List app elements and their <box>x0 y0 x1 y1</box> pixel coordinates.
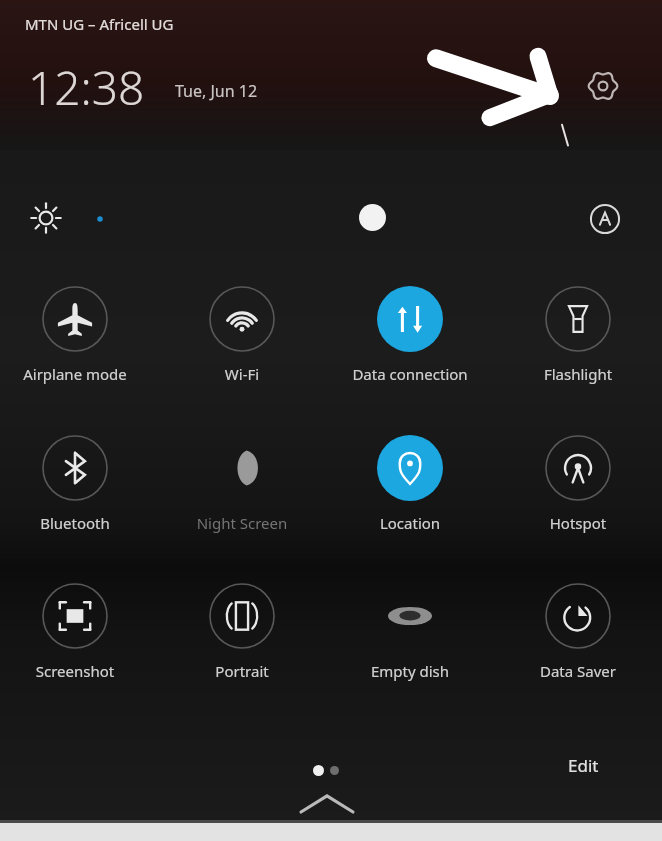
button[interactable]: Data Saver <box>512 583 644 693</box>
button[interactable]: Edit <box>568 754 599 777</box>
staticText: MTN UG – Africell UG <box>25 14 174 34</box>
staticText: Empty dish <box>344 661 476 681</box>
button[interactable] <box>359 204 386 231</box>
button[interactable]: Wi-Fi <box>176 286 308 396</box>
button[interactable]: Bluetooth <box>9 435 141 545</box>
button[interactable] <box>330 766 339 775</box>
button[interactable] <box>313 765 324 776</box>
staticText: Bluetooth <box>9 513 141 533</box>
button[interactable]: Airplane mode <box>9 286 141 396</box>
staticText: Data connection <box>344 364 476 384</box>
staticText: 12:38 <box>28 56 145 119</box>
button[interactable]: Location <box>344 435 476 545</box>
button[interactable]: Auto brightness <box>585 199 625 239</box>
button[interactable]: Hotspot <box>512 435 644 545</box>
button[interactable]: Collapse <box>296 790 358 818</box>
staticText: Wi-Fi <box>176 364 308 384</box>
staticText: Airplane mode <box>9 364 141 384</box>
button[interactable]: Flashlight <box>512 286 644 396</box>
staticText: Flashlight <box>512 364 644 384</box>
button[interactable]: Data connection <box>344 286 476 396</box>
staticText: Night Screen <box>176 513 308 533</box>
button[interactable]: Empty dish <box>344 583 476 693</box>
button[interactable]: Settings <box>580 63 626 109</box>
staticText: Location <box>344 513 476 533</box>
staticText: Hotspot <box>512 513 644 533</box>
staticText: Data Saver <box>512 661 644 681</box>
staticText: Screenshot <box>9 661 141 681</box>
staticText: Tue, Jun 12 <box>175 80 258 102</box>
staticText: Portrait <box>176 661 308 681</box>
button[interactable]: Portrait <box>176 583 308 693</box>
staticText: Edit <box>568 754 599 777</box>
button[interactable]: Night Screen <box>176 435 308 545</box>
button[interactable]: Screenshot <box>9 583 141 693</box>
